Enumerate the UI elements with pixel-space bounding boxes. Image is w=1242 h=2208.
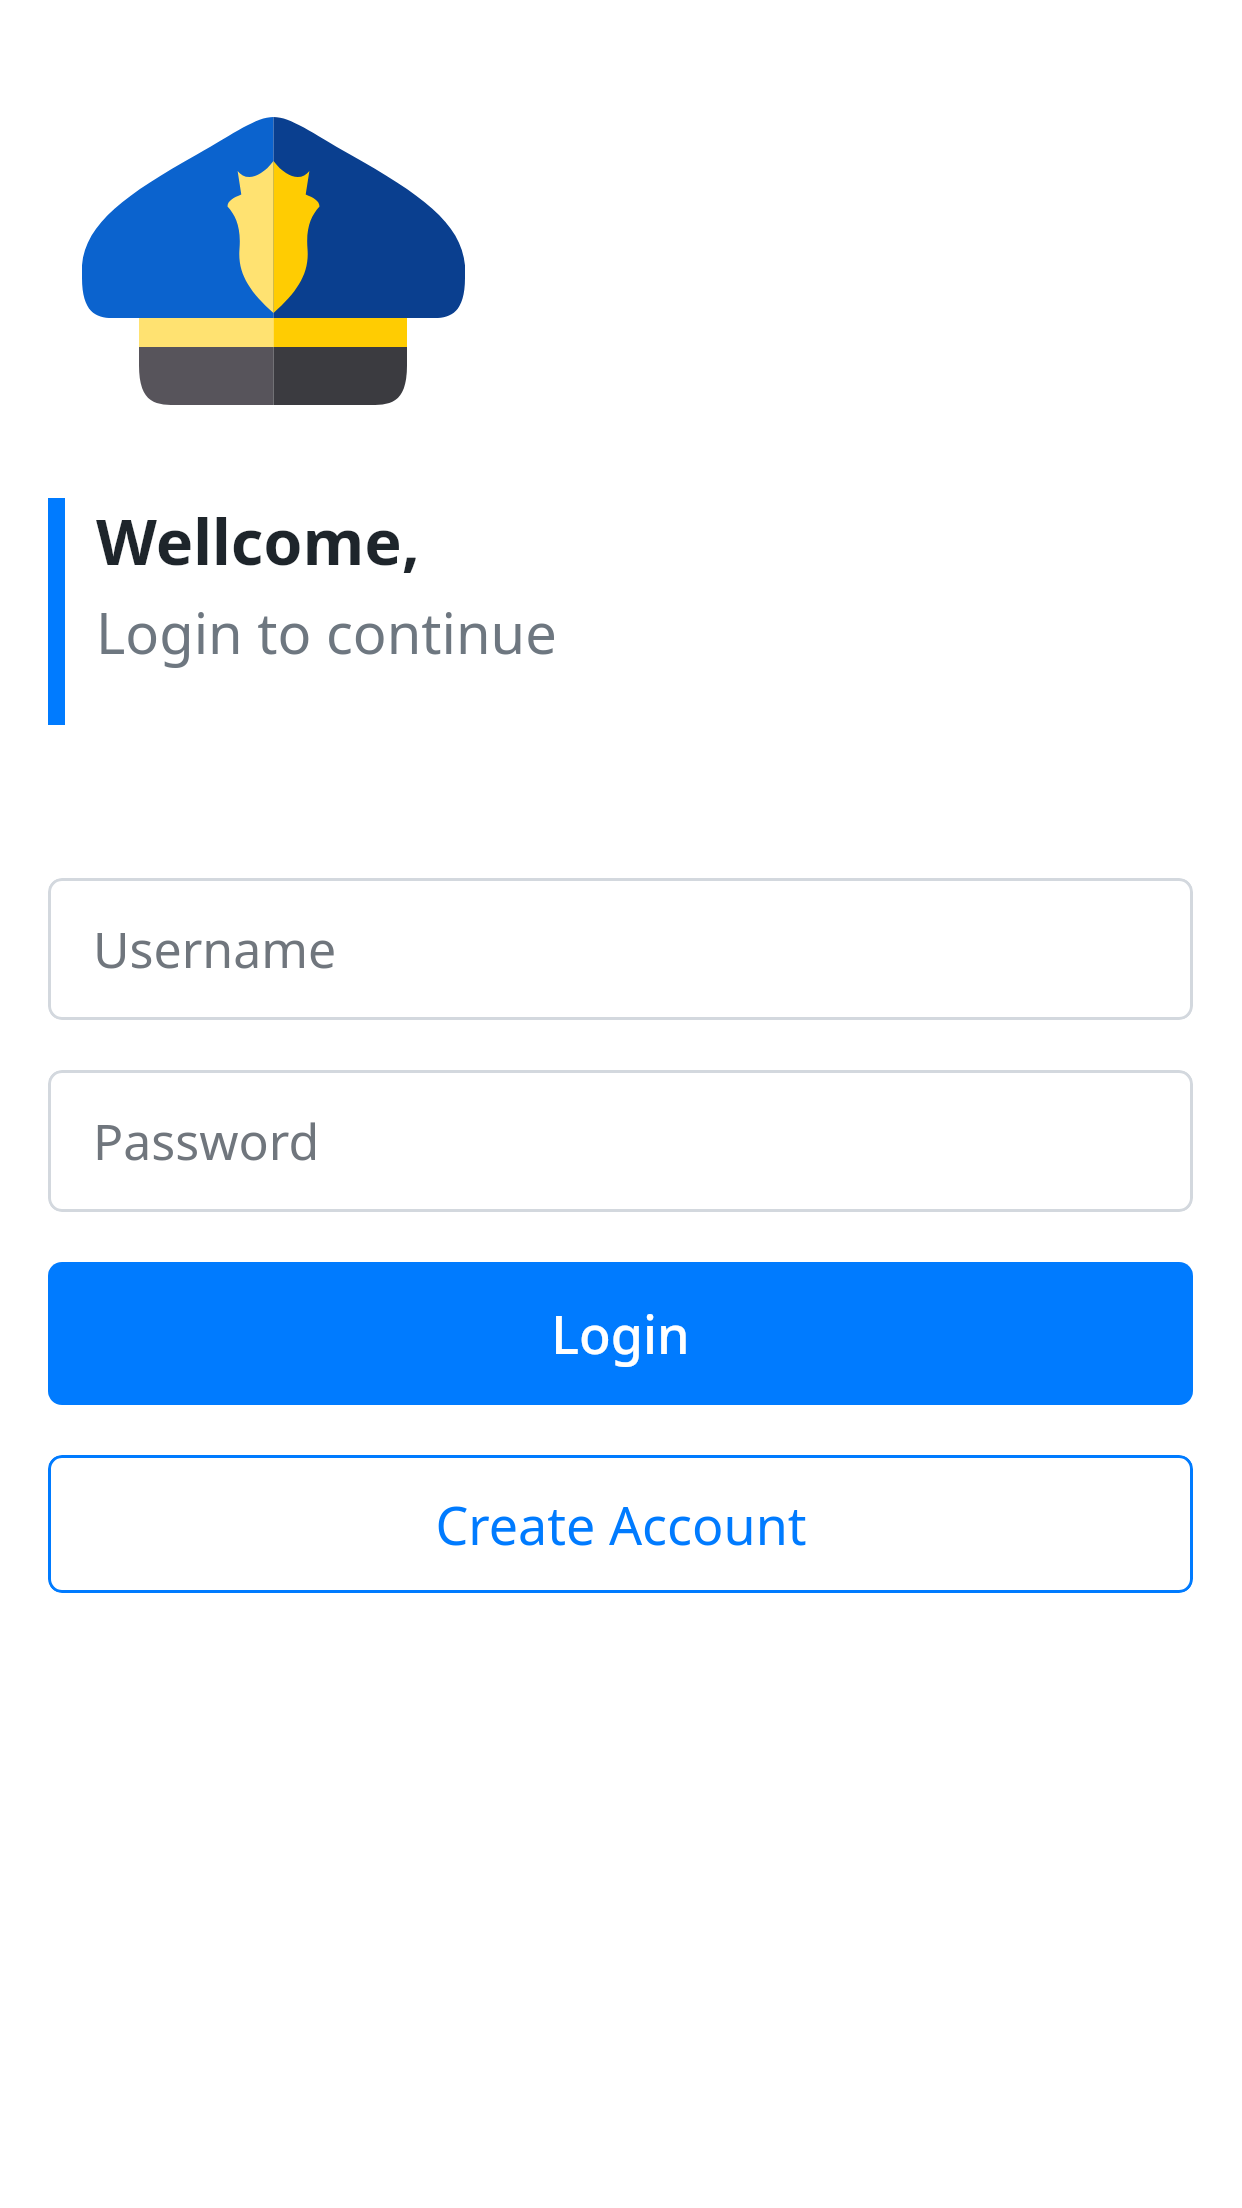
staticText: Username (93, 915, 337, 983)
staticText: Login to continue (96, 594, 557, 670)
staticText: Create Account (435, 1489, 807, 1560)
button[interactable]: Create Account (48, 1455, 1193, 1593)
other: Police cap logo (82, 117, 465, 405)
button[interactable]: Username (48, 878, 1193, 1020)
staticText: Password (93, 1107, 320, 1175)
button[interactable]: Password (48, 1070, 1193, 1212)
button[interactable]: Login (48, 1262, 1193, 1405)
staticText: Login (551, 1298, 690, 1369)
staticText: Wellcome, (96, 498, 420, 584)
